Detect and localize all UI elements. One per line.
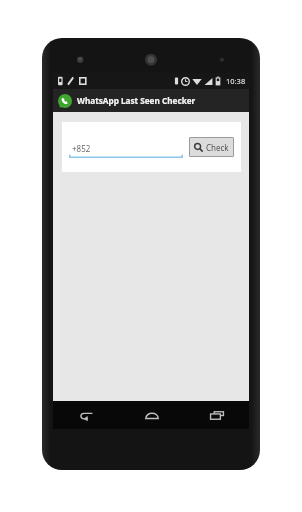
button[interactable]: Recent apps: [184, 401, 249, 429]
staticText: Check: [206, 142, 229, 153]
button[interactable]: Home: [119, 401, 184, 429]
staticText: 10:38: [226, 76, 246, 86]
staticText: WhatsApp Last Seen Checker: [77, 95, 196, 106]
staticText: +852: [72, 143, 91, 154]
button[interactable]: +852: [69, 136, 183, 158]
button[interactable]: Check: [189, 137, 234, 157]
button[interactable]: Back: [53, 401, 119, 429]
